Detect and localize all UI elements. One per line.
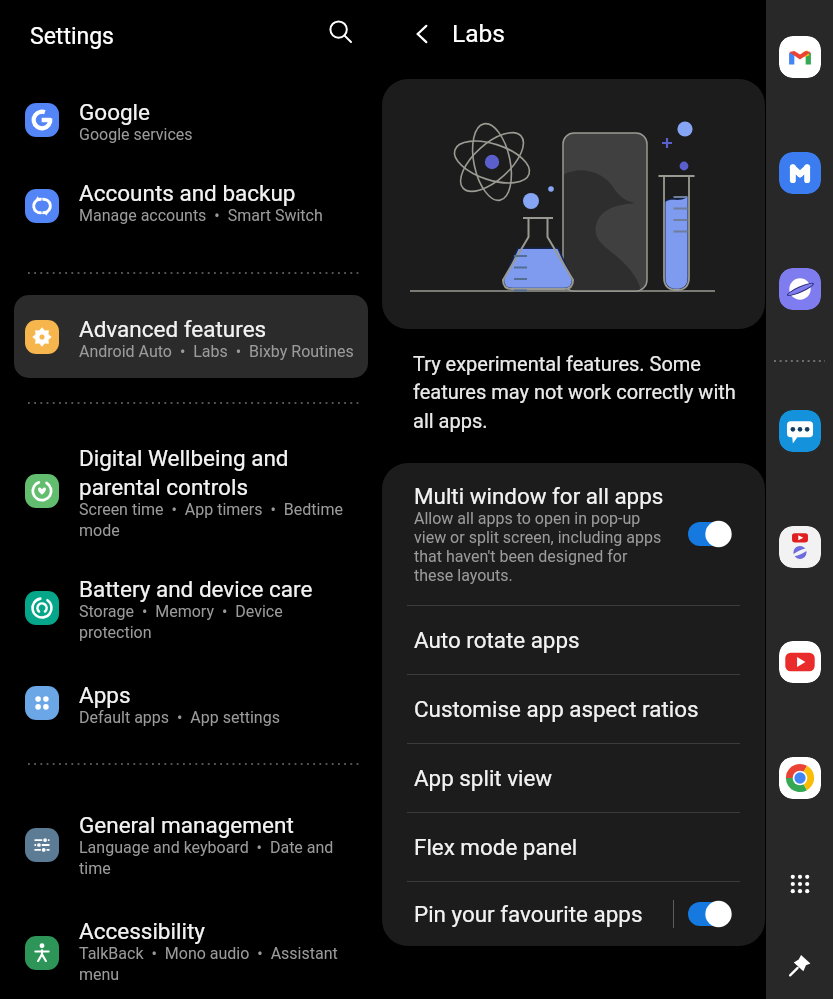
- button[interactable]: Customise app aspect ratios: [382, 675, 765, 743]
- staticText: Settings: [30, 23, 114, 50]
- button[interactable]: Auto rotate apps: [382, 606, 765, 674]
- staticText: Accessibility: [79, 918, 205, 944]
- staticText: Labs: [452, 19, 505, 48]
- button[interactable]: [14, 294, 368, 390]
- button[interactable]: App split view: [382, 744, 765, 812]
- button[interactable]: [14, 660, 368, 756]
- button[interactable]: [14, 158, 368, 254]
- staticText: Multi window for all apps: [414, 483, 664, 509]
- button[interactable]: [14, 423, 368, 519]
- button[interactable]: Toggle on: [688, 520, 731, 548]
- staticText: Google: [79, 99, 151, 125]
- staticText: Advanced features: [79, 316, 267, 342]
- button[interactable]: Messages: [779, 410, 821, 452]
- button[interactable]: YouTube: [779, 641, 821, 683]
- staticText: Manage accounts • Smart Switch: [79, 206, 323, 225]
- staticText: Auto rotate apps: [414, 627, 580, 653]
- staticText: App split view: [414, 765, 553, 791]
- button[interactable]: [14, 896, 368, 992]
- button[interactable]: Search: [320, 12, 361, 53]
- staticText: Accounts and backup: [79, 180, 296, 206]
- staticText: Language and keyboard • Date and time: [79, 838, 354, 878]
- button[interactable]: [14, 77, 368, 173]
- staticText: Flex mode panel: [414, 834, 578, 860]
- button[interactable]: [14, 554, 368, 650]
- staticText: Digital Wellbeing and parental controls: [79, 445, 354, 500]
- button[interactable]: Messenger: [779, 152, 821, 194]
- staticText: Default apps • App settings: [79, 708, 280, 727]
- staticText: Allow all apps to open in pop-up view or…: [414, 509, 666, 585]
- staticText: Try experimental features. Some features…: [413, 352, 738, 432]
- button[interactable]: Chrome: [779, 757, 821, 799]
- staticText: Pin your favourite apps: [414, 901, 673, 927]
- button[interactable]: All apps: [766, 864, 833, 904]
- button[interactable]: Gmail: [779, 36, 821, 78]
- button[interactable]: Pin taskbar: [766, 945, 833, 985]
- button[interactable]: Toggle on: [688, 900, 731, 928]
- staticText: Storage • Memory • Device protection: [79, 602, 354, 642]
- button[interactable]: App pair: [779, 526, 821, 568]
- staticText: TalkBack • Mono audio • Assistant menu: [79, 944, 354, 984]
- staticText: Screen time • App timers • Bedtime mode: [79, 500, 354, 540]
- button[interactable]: Pin your favourite apps: [382, 882, 765, 946]
- button[interactable]: Flex mode panel: [382, 813, 765, 881]
- button[interactable]: Samsung Internet: [779, 268, 821, 310]
- staticText: Android Auto • Labs • Bixby Routines: [79, 342, 354, 361]
- staticText: General management: [79, 812, 294, 838]
- staticText: Apps: [79, 682, 131, 708]
- staticText: Customise app aspect ratios: [414, 696, 699, 722]
- button[interactable]: Back: [402, 14, 442, 54]
- button[interactable]: Multi window for all apps: [382, 463, 765, 605]
- staticText: Battery and device care: [79, 576, 313, 602]
- staticText: Google services: [79, 125, 193, 144]
- button[interactable]: [14, 790, 368, 886]
